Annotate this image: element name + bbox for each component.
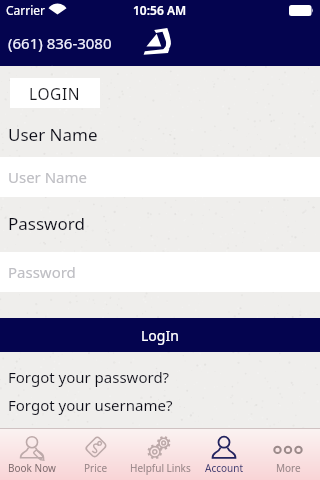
button[interactable]: Book Now bbox=[0, 428, 64, 480]
button[interactable]: Password bbox=[0, 252, 320, 292]
button[interactable]: LogIn bbox=[0, 318, 320, 352]
staticText: Password bbox=[8, 262, 76, 282]
button[interactable]: More bbox=[256, 428, 320, 480]
button[interactable]: (661) 836-3080 bbox=[8, 33, 112, 53]
button[interactable]: Account bbox=[192, 428, 256, 480]
staticText: User Name bbox=[8, 123, 98, 146]
staticText: LogIn bbox=[141, 326, 179, 345]
staticText: More bbox=[276, 461, 301, 475]
button[interactable]: User Name bbox=[0, 157, 320, 197]
button[interactable]: Helpful Links bbox=[128, 428, 192, 480]
staticText: Account bbox=[205, 461, 244, 475]
staticText: Helpful Links bbox=[130, 461, 191, 475]
staticText: User Name bbox=[8, 167, 88, 187]
button[interactable]: Forgot your username? bbox=[8, 395, 173, 415]
button[interactable]: Price bbox=[64, 428, 128, 480]
button[interactable]: LOGIN bbox=[10, 78, 100, 108]
staticText: Book Now bbox=[8, 461, 56, 475]
staticText: Carrier bbox=[6, 2, 46, 18]
staticText: Password bbox=[8, 212, 85, 235]
staticText: LOGIN bbox=[29, 83, 81, 104]
button[interactable]: Forgot your password? bbox=[8, 367, 170, 387]
staticText: Price bbox=[84, 461, 108, 475]
staticText: 10:56 AM bbox=[133, 2, 187, 18]
